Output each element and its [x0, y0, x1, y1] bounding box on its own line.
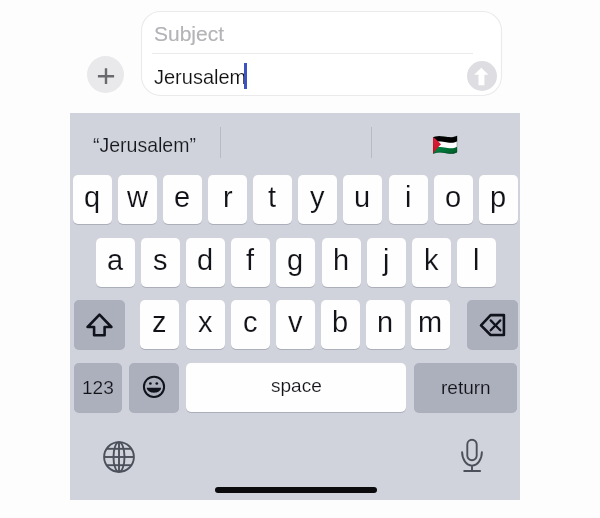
button[interactable]: r	[208, 175, 247, 224]
staticText: i	[405, 181, 412, 213]
staticText: space	[271, 375, 322, 396]
staticText: l	[473, 244, 480, 276]
staticText: u	[354, 181, 371, 213]
button[interactable]: l	[457, 238, 496, 287]
button[interactable]: n	[366, 300, 405, 349]
staticText: p	[490, 181, 507, 213]
staticText: d	[197, 244, 214, 276]
staticText: 🇵🇸	[432, 133, 459, 158]
button[interactable]: m	[411, 300, 450, 349]
staticText: y	[310, 181, 325, 213]
staticText: m	[418, 306, 443, 338]
button[interactable]: Dictate	[454, 438, 490, 474]
button[interactable]: t	[253, 175, 292, 224]
button[interactable]: o	[434, 175, 473, 224]
button[interactable]: p	[479, 175, 518, 224]
button[interactable]: w	[118, 175, 157, 224]
button[interactable]: f	[231, 238, 270, 287]
button[interactable]: 123	[74, 363, 122, 412]
button[interactable]: j	[367, 238, 406, 287]
button[interactable]: b	[321, 300, 360, 349]
staticText: w	[127, 181, 148, 213]
staticText: a	[107, 244, 124, 276]
button[interactable]: c	[231, 300, 270, 349]
staticText: k	[424, 244, 439, 276]
button[interactable]: u	[343, 175, 382, 224]
button[interactable]: Subject	[141, 11, 502, 96]
staticText: s	[153, 244, 168, 276]
staticText: b	[332, 306, 349, 338]
button[interactable]: v	[276, 300, 315, 349]
staticText: t	[268, 181, 277, 213]
staticText: e	[174, 181, 191, 213]
staticText: z	[152, 306, 167, 338]
button[interactable]: Add attachment	[87, 56, 124, 93]
button[interactable]	[129, 363, 179, 412]
button[interactable]: Send	[467, 61, 497, 91]
button[interactable]: i	[389, 175, 428, 224]
staticText: f	[246, 244, 255, 276]
staticText: “Jerusalem”	[93, 134, 196, 156]
button[interactable]: a	[96, 238, 135, 287]
button[interactable]: return	[414, 363, 517, 412]
button[interactable]: g	[276, 238, 315, 287]
button[interactable]: y	[298, 175, 337, 224]
button[interactable]: d	[186, 238, 225, 287]
staticText: h	[333, 244, 350, 276]
staticText: n	[377, 306, 394, 338]
staticText: o	[445, 181, 462, 213]
button[interactable]: x	[186, 300, 225, 349]
staticText: c	[243, 306, 258, 338]
button[interactable]: h	[322, 238, 361, 287]
staticText: j	[383, 244, 390, 276]
staticText: Jerusalem	[154, 66, 247, 88]
button[interactable]: s	[141, 238, 180, 287]
button[interactable]: q	[73, 175, 112, 224]
button[interactable]	[74, 300, 125, 349]
staticText: q	[84, 181, 101, 213]
staticText: v	[288, 306, 303, 338]
button[interactable]: e	[163, 175, 202, 224]
staticText: g	[287, 244, 304, 276]
button[interactable]: space	[186, 363, 406, 412]
staticText: r	[223, 181, 233, 213]
button[interactable]: Change keyboard	[101, 439, 137, 475]
button[interactable]: z	[140, 300, 179, 349]
button[interactable]: k	[412, 238, 451, 287]
staticText: 123	[82, 377, 114, 398]
button[interactable]	[467, 300, 518, 349]
staticText: Subject	[154, 22, 225, 45]
staticText: return	[441, 377, 491, 398]
staticText: x	[198, 306, 213, 338]
